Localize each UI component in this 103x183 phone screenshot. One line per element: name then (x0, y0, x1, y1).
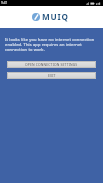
other: MUIQ logo (32, 13, 40, 21)
staticText: 9:41 (1, 1, 8, 5)
other: Signal, battery and network status (86, 2, 102, 5)
staticText: EXIT (48, 73, 56, 78)
button[interactable]: OPEN CONNECTION SETTINGS (7, 61, 96, 68)
button[interactable]: EXIT (7, 72, 96, 79)
staticText: MUIQ (42, 11, 69, 22)
staticText: It looks like you have no internet conne… (5, 37, 98, 52)
staticText: OPEN CONNECTION SETTINGS (25, 62, 78, 67)
